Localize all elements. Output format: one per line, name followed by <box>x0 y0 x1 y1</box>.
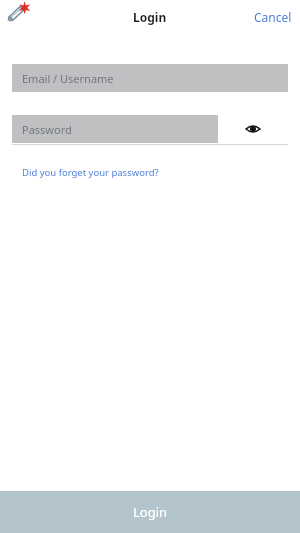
button[interactable]: App logo <box>6 3 36 31</box>
button[interactable]: Did you forget your password? <box>12 163 169 182</box>
staticText: Login <box>133 503 168 521</box>
button[interactable]: Show password <box>218 115 288 143</box>
staticText: Email / Username <box>22 71 114 86</box>
button[interactable]: Login <box>0 491 300 533</box>
staticText: Cancel <box>254 9 292 25</box>
button[interactable]: Email / Username <box>12 64 288 92</box>
button[interactable]: Password <box>12 115 218 143</box>
staticText: Did you forget your password? <box>22 166 159 179</box>
staticText: Password <box>22 122 72 137</box>
button[interactable]: Cancel <box>246 3 300 31</box>
staticText: Login <box>133 9 167 25</box>
